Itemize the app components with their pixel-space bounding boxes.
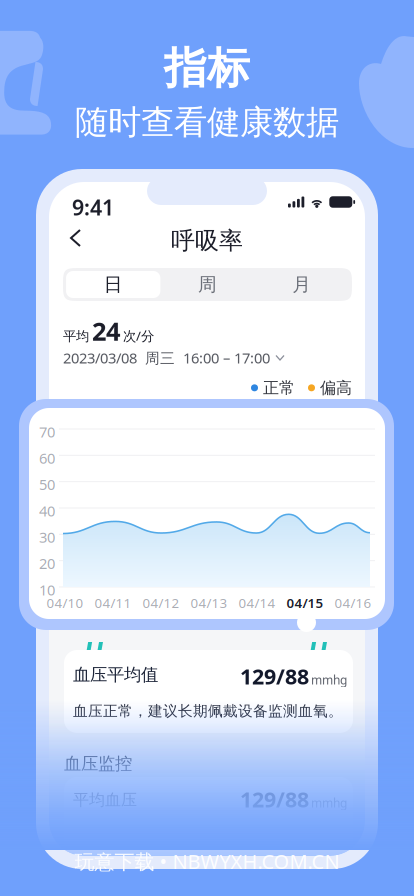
staticText: 70 — [39, 422, 55, 441]
staticText: 30 — [39, 527, 55, 547]
staticText: 周 — [198, 273, 217, 296]
button[interactable]: 日 — [66, 271, 160, 298]
staticText: 2023/03/08 周三 16:00 – 17:00 — [63, 348, 270, 367]
staticText: 9:41 — [72, 193, 114, 221]
staticText: 呼吸率 — [171, 226, 243, 255]
staticText: mmhg — [311, 795, 347, 811]
staticText: 次/分 — [123, 327, 154, 344]
staticText: 血压正常，建议长期佩戴设备监测血氧。 — [73, 702, 343, 720]
staticText: 04/13 — [190, 594, 227, 612]
staticText: 血压平均值 — [73, 664, 158, 685]
staticText: 04/10 — [46, 594, 83, 612]
staticText: 129/88 — [240, 785, 309, 813]
staticText: 10 — [39, 580, 55, 599]
button[interactable]: 月 — [255, 271, 349, 298]
staticText: 正常 — [263, 378, 295, 398]
staticText: 平均 — [63, 328, 89, 344]
staticText: 月 — [292, 273, 311, 296]
staticText: 玩意下载 • NBWYXH.COM.CN — [74, 848, 339, 875]
staticText: mmhg — [311, 672, 347, 688]
staticText: 04/11 — [94, 594, 131, 612]
staticText: 偏高 — [320, 378, 352, 398]
staticText: 04/12 — [142, 594, 179, 612]
staticText: 50 — [39, 475, 55, 494]
staticText: 04/15 — [286, 594, 323, 612]
staticText: 60 — [39, 448, 55, 468]
staticText: 日 — [104, 273, 123, 296]
staticText: 随时查看健康数据 — [75, 102, 339, 143]
button[interactable]: Back — [61, 220, 90, 256]
staticText: 指标 — [164, 42, 250, 94]
staticText: 20 — [39, 554, 55, 573]
staticText: 平均血压 — [73, 790, 137, 810]
staticText: 129/88 — [240, 662, 309, 690]
staticText: 40 — [39, 501, 55, 520]
staticText: 04/16 — [334, 594, 371, 612]
staticText: 24 — [92, 314, 120, 348]
staticText: 04/14 — [238, 594, 275, 612]
button[interactable]: 周 — [160, 271, 255, 298]
staticText: 血压监控 — [64, 753, 132, 774]
